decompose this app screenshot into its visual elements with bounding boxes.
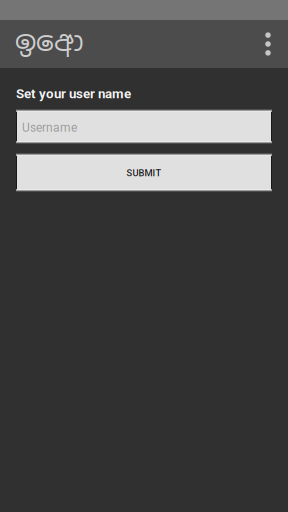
staticText: Username: [22, 121, 77, 135]
button[interactable]: Username: [16, 110, 272, 144]
staticText: ඉඅො: [15, 23, 84, 59]
staticText: SUBMIT: [126, 168, 161, 178]
button[interactable]: SUBMIT: [16, 154, 272, 192]
staticText: Set your user name: [16, 86, 131, 102]
button[interactable]: More options: [248, 20, 288, 68]
